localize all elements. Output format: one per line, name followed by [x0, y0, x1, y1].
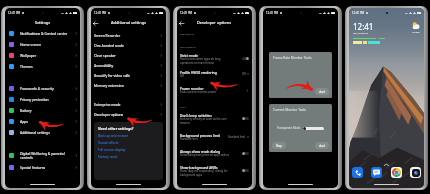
staticText: Profile HWUI rendering: [180, 70, 217, 74]
staticText: 12:41 PM: [352, 11, 365, 15]
staticText: Special features: [20, 165, 75, 170]
staticText: 46: [233, 11, 236, 14]
button[interactable]: Messages: [371, 167, 382, 178]
button[interactable]: Back: [177, 19, 185, 27]
staticText: No data: [412, 31, 420, 34]
button[interactable]: Memory extension: [91, 80, 166, 90]
staticText: Screen Recorder: [94, 33, 160, 38]
staticText: Developer options: [94, 112, 160, 117]
staticText: Wallpaper: [20, 53, 75, 58]
staticText: Passwords & security: [20, 86, 75, 91]
staticText: Standard limit: [180, 137, 198, 141]
staticText: 12:41 PM: [8, 11, 21, 15]
button[interactable]: Phone: [352, 167, 363, 178]
staticText: Developer options: [197, 20, 232, 25]
staticText: 12:41 PM: [266, 11, 279, 15]
staticText: 12:41 PM: [94, 11, 107, 15]
staticText: 12:41: [353, 21, 374, 32]
button[interactable]: Chrome: [391, 167, 402, 178]
staticText: Off: [180, 74, 184, 78]
button[interactable]: Always show crash dialog: [177, 147, 252, 159]
button[interactable]: Themes: [5, 61, 80, 72]
button[interactable]: Developer options: [91, 109, 166, 119]
staticText: start: [319, 90, 326, 94]
staticText: Settings: [35, 20, 51, 25]
button[interactable]: Special features: [5, 162, 80, 173]
staticText: Tools used to monitor power: [180, 90, 217, 94]
button[interactable]: Home screen: [5, 39, 80, 50]
button[interactable]: Passwords & security: [5, 83, 80, 94]
staticText: 46: [319, 11, 322, 14]
staticText: Strict mode: [180, 53, 199, 57]
staticText: Clear speaker: [94, 53, 160, 58]
button[interactable]: Background process limit: [177, 131, 252, 143]
staticText: End every activity as soon as the user l…: [180, 117, 227, 124]
staticText: Off: [242, 72, 246, 76]
button[interactable]: Stop: [272, 142, 286, 149]
staticText: MONITORING: [180, 45, 196, 48]
staticText: Enterprise mode: [94, 102, 160, 107]
staticText: Privacy protection: [20, 97, 75, 102]
button[interactable]: Back: [91, 19, 99, 27]
staticText: Battery: [20, 108, 75, 113]
button[interactable]: Beautify for video calls: [91, 70, 166, 80]
staticText: Need other settings?: [98, 126, 134, 131]
button[interactable]: Battery: [5, 105, 80, 116]
staticText: start: [319, 144, 326, 148]
button[interactable]: Show background ANRs: [177, 163, 252, 178]
staticText: 46: [405, 11, 408, 14]
staticText: Notifications & Control center: [20, 31, 75, 36]
staticText: Additional settings: [111, 20, 146, 25]
staticText: Power monitor: [180, 86, 204, 90]
button[interactable]: Camera: [410, 167, 421, 178]
staticText: Apps: [20, 119, 75, 124]
button[interactable]: Strict mode: [177, 51, 252, 66]
staticText: Digital Wellbeing & parental controls: [20, 151, 75, 160]
staticText: Flash screen when apps do long operation…: [180, 57, 221, 64]
staticText: Home screen: [20, 42, 75, 47]
staticText: Tue, March 05: [353, 32, 369, 35]
button[interactable]: Power monitor: [177, 84, 252, 96]
button[interactable]: Accessibility: [91, 60, 166, 70]
button[interactable]: Sound effects: [98, 141, 119, 145]
button[interactable]: start: [315, 142, 329, 149]
staticText: Frame Rate Monitor Tools: [273, 56, 312, 60]
button[interactable]: Notifications & Control center: [5, 28, 80, 39]
staticText: Transparent Mode: [277, 126, 301, 130]
staticText: Show "App not responding" dialog for bac…: [180, 169, 228, 176]
button[interactable]: start: [315, 88, 329, 95]
staticText: Stop: [276, 144, 282, 148]
staticText: 46: [61, 11, 64, 14]
staticText: DEBUGGING: [180, 32, 195, 35]
staticText: Always show crash dialog: [180, 149, 221, 153]
button[interactable]: Back up and restore: [98, 134, 128, 138]
button[interactable]: Don't keep activities: [177, 111, 252, 126]
staticText: Additional settings: [20, 130, 75, 135]
button[interactable]: Full screen display: [98, 148, 126, 152]
button[interactable]: Apps: [5, 116, 80, 127]
button[interactable]: One-handed mode: [91, 40, 166, 50]
button[interactable]: Digital Wellbeing & parental controls: [5, 149, 80, 162]
staticText: 12:41 PM: [180, 11, 193, 15]
staticText: Background process limit: [180, 133, 220, 137]
button[interactable]: Enterprise mode: [91, 99, 166, 109]
button[interactable]: Additional settings: [5, 127, 80, 138]
staticText: Standard limit: [228, 135, 246, 139]
staticText: Show background ANRs: [180, 165, 218, 169]
button[interactable]: Profile HWUI rendering: [177, 68, 252, 80]
staticText: Beautify for video calls: [94, 73, 160, 78]
staticText: Show dialog every time an app crashes: [180, 153, 229, 157]
button[interactable]: Clear speaker: [91, 50, 166, 60]
staticText: APPS: [180, 105, 186, 108]
button[interactable]: Wallpaper: [5, 50, 80, 61]
staticText: Themes: [20, 64, 75, 69]
staticText: One-handed mode: [94, 43, 160, 48]
staticText: 46: [147, 11, 150, 14]
staticText: Don't keep activities: [180, 113, 212, 117]
staticText: Memory extension: [94, 83, 160, 88]
button[interactable]: Screen Recorder: [91, 30, 166, 40]
staticText: Current Monitor Tools: [273, 108, 306, 112]
staticText: Accessibility: [94, 63, 160, 68]
button[interactable]: Factory reset: [98, 155, 118, 159]
button[interactable]: Privacy protection: [5, 94, 80, 105]
